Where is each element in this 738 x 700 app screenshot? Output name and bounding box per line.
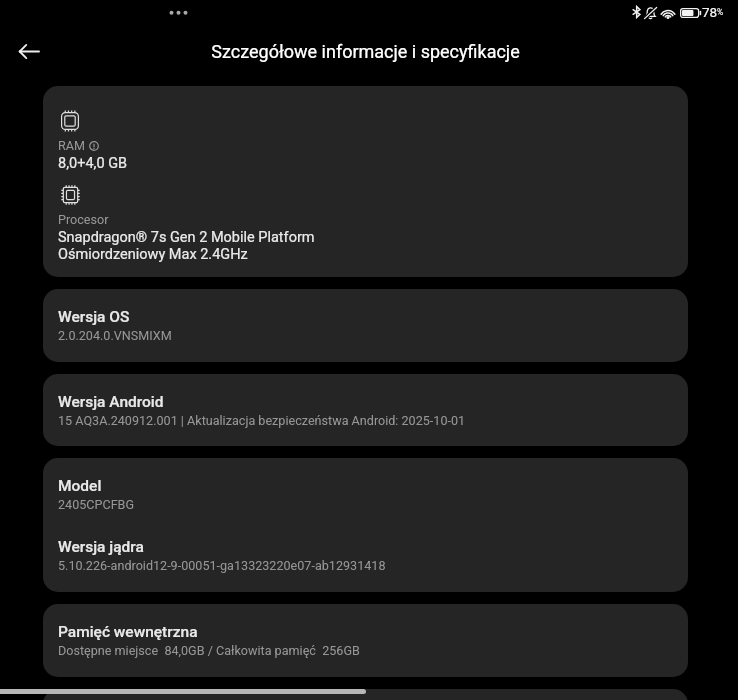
staticText: Dostępne miejsce 84,0GB / Całkowita pami…: [58, 643, 360, 658]
button[interactable]: Wersja Android: [43, 374, 688, 446]
button[interactable]: Pamięć wewnętrzna: [43, 604, 688, 677]
staticText: 78: [702, 4, 718, 20]
staticText: Pamięć wewnętrzna: [58, 623, 198, 641]
button[interactable]: Wersja OS: [43, 289, 688, 362]
staticText: Ośmiordzeniowy Max 2.4GHz: [58, 246, 248, 263]
button[interactable]: RAM: [43, 86, 688, 277]
staticText: Wersja jądra: [58, 538, 144, 556]
staticText: 8,0+4,0 GB: [58, 155, 128, 172]
staticText: Wersja OS: [58, 308, 130, 326]
staticText: Model: [58, 477, 102, 495]
staticText: 2405CPCFBG: [58, 497, 135, 512]
staticText: 2.0.204.0.VNSMIXM: [58, 328, 172, 343]
staticText: Wersja Android: [58, 393, 164, 411]
button[interactable]: Model: [43, 458, 688, 592]
staticText: 5.10.226-android12-9-00051-ga13323220e07…: [58, 558, 386, 573]
staticText: 15 AQ3A.240912.001 | Aktualizacja bezpie…: [58, 413, 466, 428]
button[interactable]: Back: [10, 32, 48, 70]
staticText: Szczegółowe informacje i specyfikacje: [211, 41, 520, 62]
staticText: RAM: [58, 138, 85, 153]
button[interactable]: [43, 689, 688, 700]
staticText: Procesor: [58, 212, 109, 227]
staticText: %: [717, 7, 724, 17]
staticText: Snapdragon® 7s Gen 2 Mobile Platform: [58, 229, 315, 246]
